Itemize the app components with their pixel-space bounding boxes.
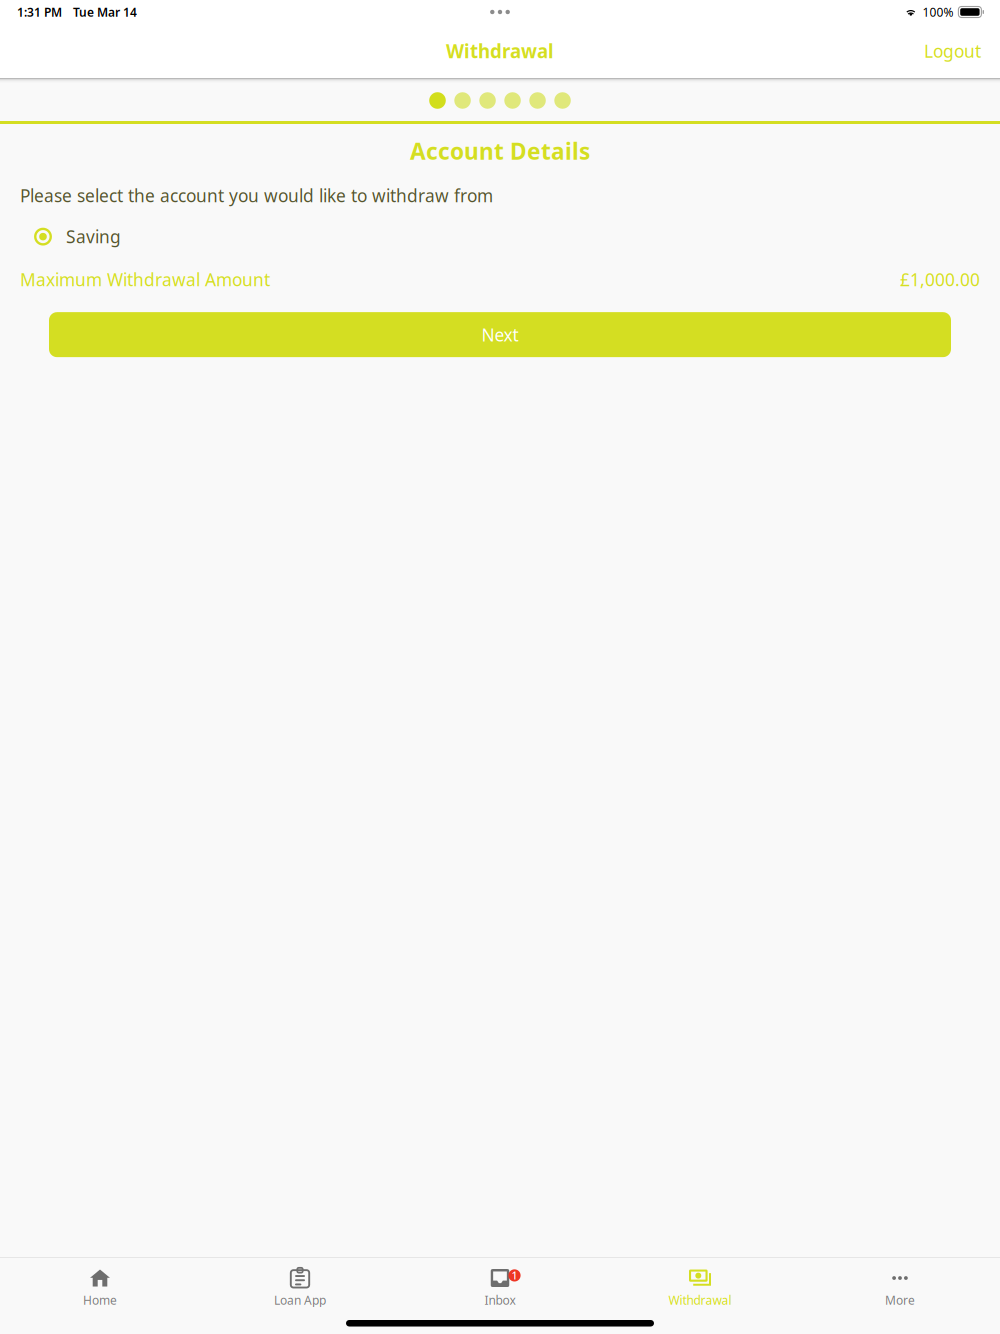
staticText: More (885, 1292, 915, 1308)
staticText: Withdrawal (668, 1292, 731, 1308)
staticText: Loan App (274, 1292, 326, 1308)
staticText: Please select the account you would like… (20, 184, 493, 207)
staticText: Maximum Withdrawal Amount (20, 268, 270, 291)
button[interactable]: Next (49, 312, 951, 357)
staticText: £1,000.00 (900, 268, 980, 291)
staticText: Saving (66, 225, 121, 248)
button[interactable]: Loan App (200, 1251, 400, 1314)
staticText: Logout (924, 39, 981, 62)
staticText: Home (83, 1292, 117, 1308)
staticText: 1:31 PM (17, 4, 62, 20)
staticText: Next (481, 323, 518, 346)
staticText: Inbox (484, 1292, 515, 1308)
staticText: Withdrawal (446, 39, 554, 63)
button[interactable]: Saving (0, 207, 1000, 248)
staticText: 100% (922, 4, 953, 20)
button[interactable]: Withdrawal (600, 1251, 800, 1314)
button[interactable]: Logout (924, 39, 981, 62)
button[interactable]: More (800, 1251, 1000, 1314)
staticText: Tue Mar 14 (73, 4, 137, 20)
staticText: 1 (511, 1268, 517, 1282)
button[interactable]: Home (0, 1251, 200, 1314)
staticText: Account Details (410, 136, 590, 166)
button[interactable]: 1 (400, 1251, 600, 1314)
